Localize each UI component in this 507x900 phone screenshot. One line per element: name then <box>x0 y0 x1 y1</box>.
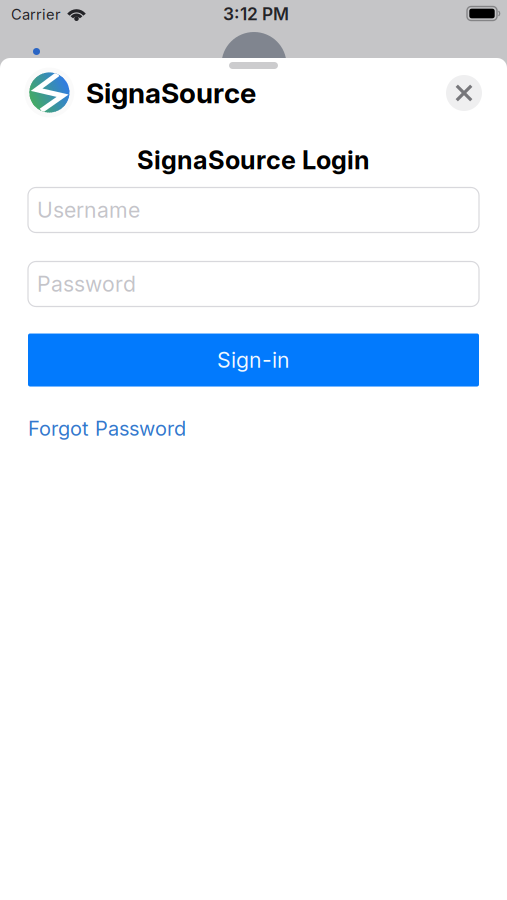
staticText: SignaSource Login <box>137 145 370 175</box>
button[interactable]: Close <box>446 75 482 111</box>
button[interactable]: Forgot Password <box>28 417 186 440</box>
staticText: Username <box>37 197 140 223</box>
staticText: Password <box>37 271 136 297</box>
staticText: Sign-in <box>217 347 290 373</box>
staticText: Password <box>37 271 136 297</box>
staticText: Carrier <box>11 6 61 23</box>
staticText: SignaSource <box>86 76 256 109</box>
staticText: 3:12 PM <box>223 4 289 24</box>
textField[interactable]: Password <box>37 271 479 297</box>
staticText: Username <box>37 197 140 223</box>
button[interactable]: Sign-in <box>28 333 479 386</box>
staticText: Forgot Password <box>28 417 186 440</box>
textField[interactable]: Username <box>37 197 479 223</box>
